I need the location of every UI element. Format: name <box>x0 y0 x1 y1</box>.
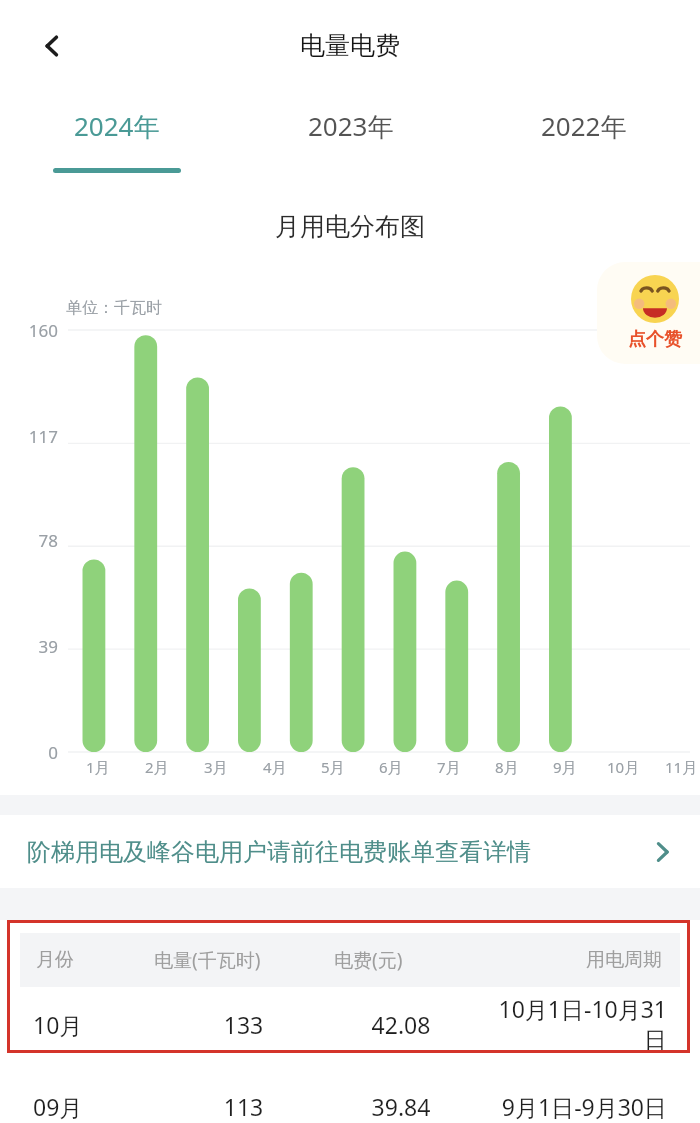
staticText: 78 <box>10 529 58 552</box>
staticText: 单位：千瓦时 <box>66 298 162 318</box>
staticText: 133 <box>161 1009 326 1040</box>
staticText: 月份 <box>36 948 154 972</box>
staticText: 8月 <box>495 757 519 777</box>
button[interactable]: 2023年 <box>234 108 467 186</box>
staticText: 0 <box>10 741 58 764</box>
staticText: 月用电分布图 <box>0 211 700 242</box>
button[interactable]: 阶梯用电及峰谷电用户请前往电费账单查看详情 <box>0 815 700 888</box>
staticText: 160 <box>10 319 58 342</box>
staticText: 09月 <box>33 1091 161 1122</box>
staticText: 2023年 <box>308 108 394 144</box>
staticText: 5月 <box>321 757 345 777</box>
staticText: 1月 <box>86 757 110 777</box>
staticText: 10月1日-10月31日 <box>476 993 667 1055</box>
button[interactable]: 2022年 <box>467 108 700 186</box>
staticText: 用电周期 <box>586 948 662 972</box>
staticText: 电量电费 <box>0 30 700 61</box>
button[interactable]: Back <box>28 22 76 70</box>
staticText: 2022年 <box>541 108 627 144</box>
staticText: 39 <box>10 635 58 658</box>
button[interactable]: 10月 <box>0 993 700 1055</box>
staticText: 39.84 <box>326 1091 476 1122</box>
staticText: 2月 <box>145 757 169 777</box>
button[interactable]: 2024年 <box>0 108 234 186</box>
staticText: 2024年 <box>74 108 160 144</box>
staticText: 42.08 <box>326 1009 476 1040</box>
staticText: 9月 <box>553 757 577 777</box>
button[interactable]: 点个赞 <box>597 262 700 364</box>
staticText: 3月 <box>204 757 228 777</box>
staticText: 10月 <box>607 757 640 777</box>
staticText: 11月 <box>665 757 698 777</box>
staticText: 113 <box>161 1091 326 1122</box>
button[interactable]: 09月 <box>0 1075 700 1123</box>
staticText: 电费(元) <box>334 947 586 973</box>
staticText: 阶梯用电及峰谷电用户请前往电费账单查看详情 <box>27 837 531 867</box>
staticText: 电量(千瓦时) <box>154 947 334 973</box>
staticText: 7月 <box>437 757 461 777</box>
staticText: 4月 <box>263 757 287 777</box>
staticText: 117 <box>10 425 58 448</box>
staticText: 9月1日-9月30日 <box>476 1091 667 1122</box>
staticText: 10月 <box>33 1009 161 1040</box>
staticText: 点个赞 <box>628 328 682 351</box>
staticText: 6月 <box>379 757 403 777</box>
